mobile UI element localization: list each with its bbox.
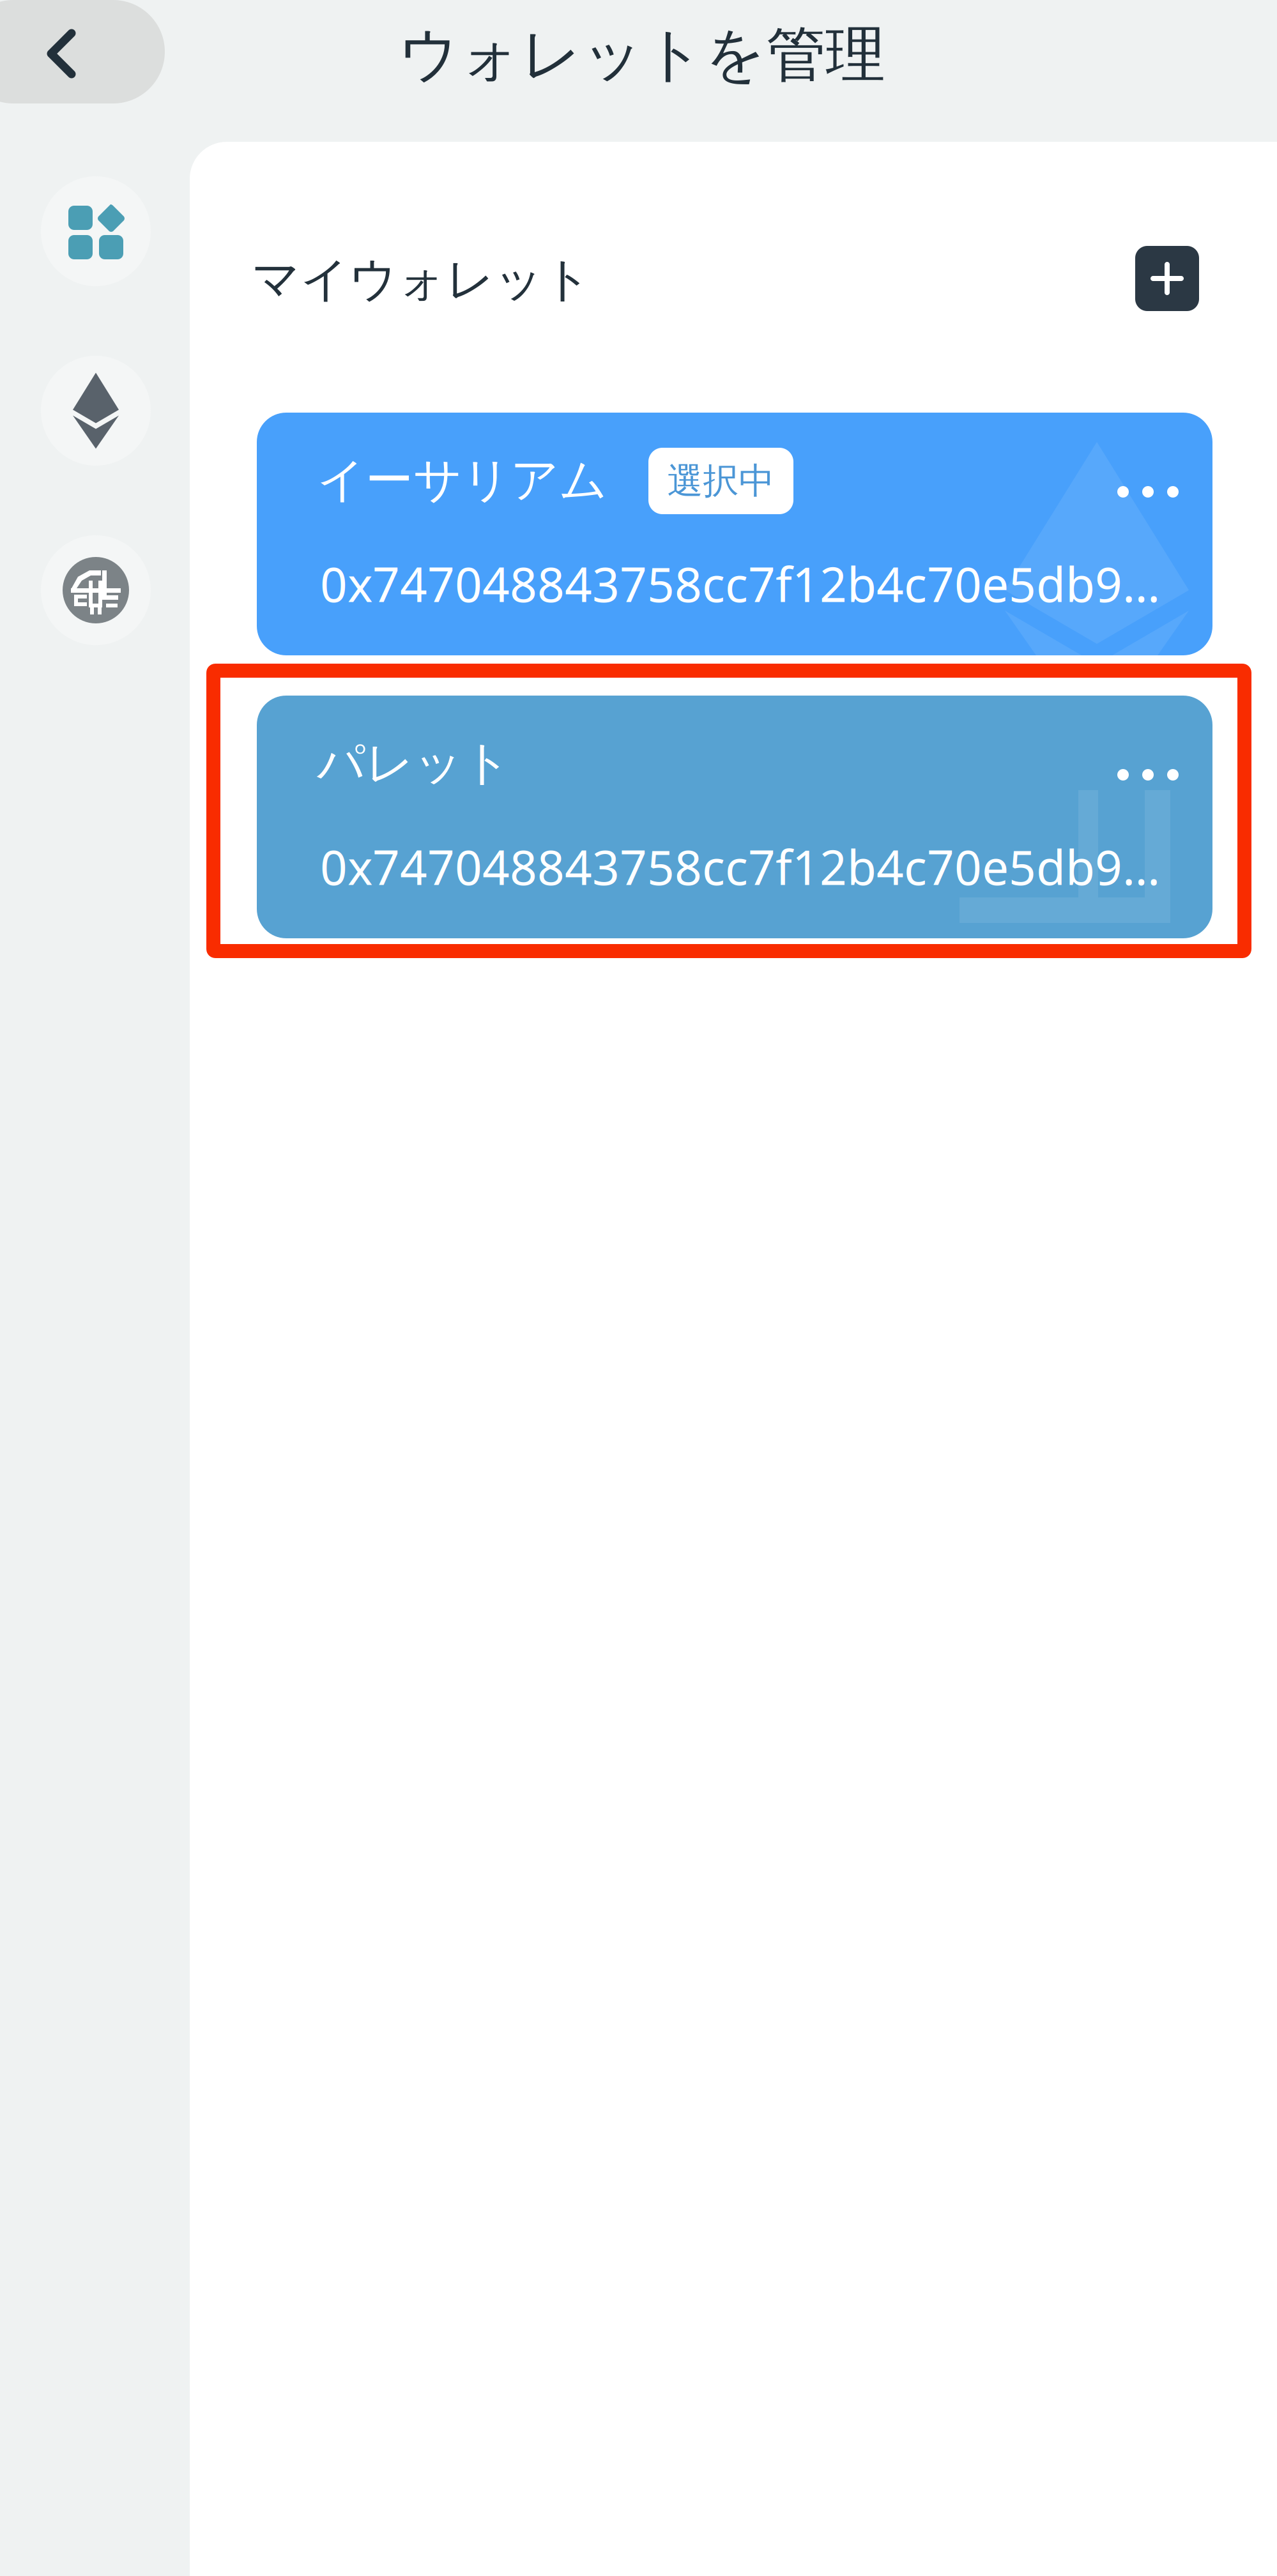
staticText: マイウォレット [252, 250, 592, 309]
button[interactable]: Apps [41, 176, 151, 286]
button[interactable]: Token [41, 535, 151, 645]
button[interactable]: Ethereum [41, 356, 151, 466]
button[interactable]: Add wallet [1135, 246, 1199, 311]
button[interactable]: Back [0, 0, 165, 103]
button[interactable]: パレット [257, 696, 1212, 938]
staticText: イーサリアム [317, 451, 608, 510]
staticText: 0x747048843758cc7f12b4c70e5db9… [320, 835, 1160, 898]
staticText: 選択中 [667, 459, 775, 503]
staticText: 0x747048843758cc7f12b4c70e5db9… [320, 552, 1160, 615]
button[interactable]: イーサリアム [257, 413, 1212, 655]
staticText: パレット [317, 734, 511, 792]
staticText: ウォレットを管理 [398, 18, 885, 92]
